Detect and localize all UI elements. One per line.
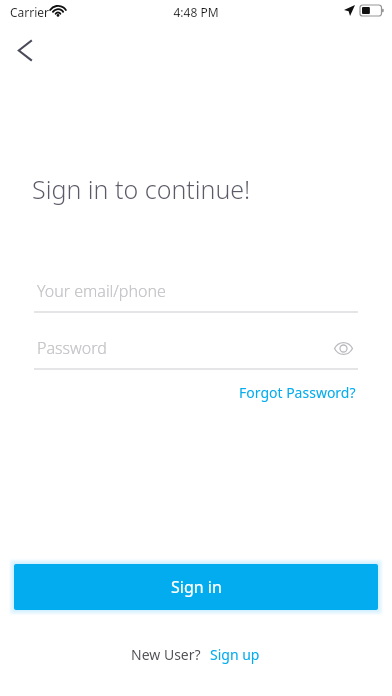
staticText: New User?: [131, 645, 201, 664]
staticText: Sign up: [210, 645, 260, 664]
button[interactable]: Sign in: [14, 564, 378, 610]
staticText: Password: [37, 337, 107, 359]
button[interactable]: Password: [34, 333, 358, 370]
staticText: Forgot Password?: [239, 383, 356, 402]
staticText: Sign in to continue!: [32, 172, 251, 206]
button[interactable]: Back: [6, 32, 42, 68]
button[interactable]: Your email/phone: [34, 276, 358, 313]
staticText: 4:48 PM: [0, 4, 392, 20]
button[interactable]: Show password: [328, 333, 358, 363]
staticText: Sign in: [171, 576, 222, 598]
button[interactable]: Sign up: [208, 643, 262, 666]
staticText: Carrier: [10, 4, 50, 20]
button[interactable]: Forgot Password?: [234, 380, 361, 405]
staticText: Your email/phone: [37, 280, 166, 302]
